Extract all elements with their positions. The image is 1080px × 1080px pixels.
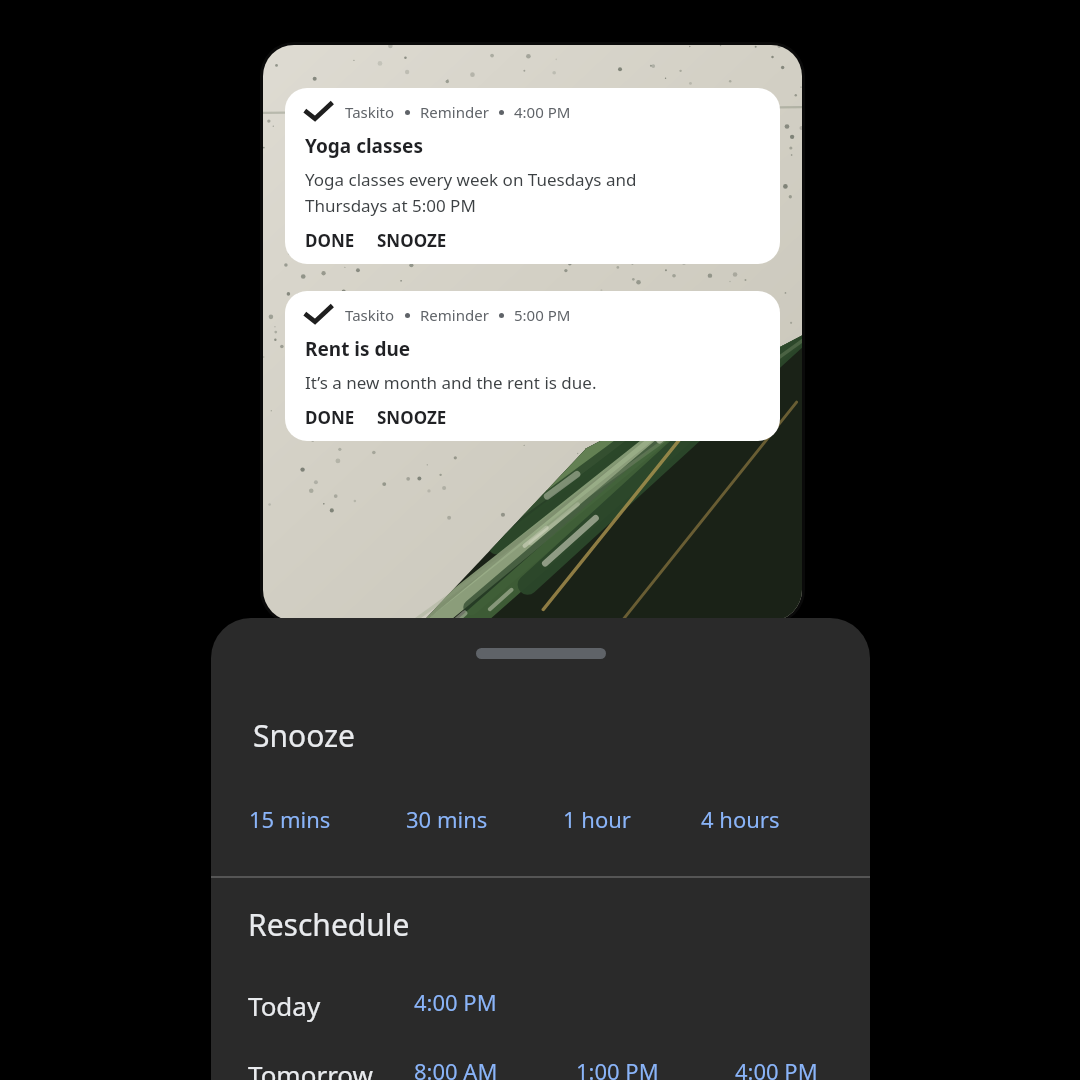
staticText: 4:00 PM xyxy=(735,1056,818,1080)
staticText: 1:00 PM xyxy=(576,1056,659,1080)
staticText: SNOOZE xyxy=(377,229,447,252)
staticText: Taskito xyxy=(345,305,395,325)
staticText: Yoga classes xyxy=(305,133,423,159)
staticText: Yoga classes every week on Tuesdays and xyxy=(305,168,637,191)
staticText: 8:00 AM xyxy=(414,1056,498,1080)
button[interactable]: DONE xyxy=(305,229,355,252)
staticText: 30 mins xyxy=(406,804,488,834)
staticText: 1 hour xyxy=(563,804,631,834)
staticText: Reschedule xyxy=(248,904,410,945)
button[interactable]: SNOOZE xyxy=(377,406,447,429)
staticText: SNOOZE xyxy=(377,406,447,429)
button[interactable]: 8:00 AM xyxy=(414,1052,498,1080)
staticText: 15 mins xyxy=(249,804,331,834)
staticText: Reminder xyxy=(420,102,489,122)
button[interactable]: 1:00 PM xyxy=(576,1052,659,1080)
button[interactable]: SNOOZE xyxy=(377,229,447,252)
button[interactable]: 4 hours xyxy=(701,800,780,838)
button[interactable]: 15 mins xyxy=(249,800,331,838)
staticText: Rent is due xyxy=(305,336,411,362)
button[interactable]: Taskito xyxy=(285,291,780,441)
staticText: Reminder xyxy=(420,305,489,325)
staticText: 4:00 PM xyxy=(514,102,571,122)
staticText: DONE xyxy=(305,229,355,252)
staticText: Today xyxy=(248,988,321,1023)
button[interactable]: 4:00 PM xyxy=(735,1052,818,1080)
staticText: DONE xyxy=(305,406,355,429)
staticText: Taskito xyxy=(345,102,395,122)
button[interactable]: 1 hour xyxy=(563,800,631,838)
button[interactable]: 4:00 PM xyxy=(414,983,497,1021)
staticText: 4:00 PM xyxy=(414,987,497,1017)
staticText: 4 hours xyxy=(701,804,780,834)
staticText: It’s a new month and the rent is due. xyxy=(305,371,597,394)
staticText: Thursdays at 5:00 PM xyxy=(305,194,476,217)
button[interactable]: Drag handle xyxy=(476,648,606,659)
staticText: Tomorrow xyxy=(248,1057,374,1080)
button[interactable]: DONE xyxy=(305,406,355,429)
button[interactable]: Taskito xyxy=(285,88,780,264)
staticText: Snooze xyxy=(253,715,356,756)
staticText: 5:00 PM xyxy=(514,305,571,325)
button[interactable]: 30 mins xyxy=(406,800,488,838)
